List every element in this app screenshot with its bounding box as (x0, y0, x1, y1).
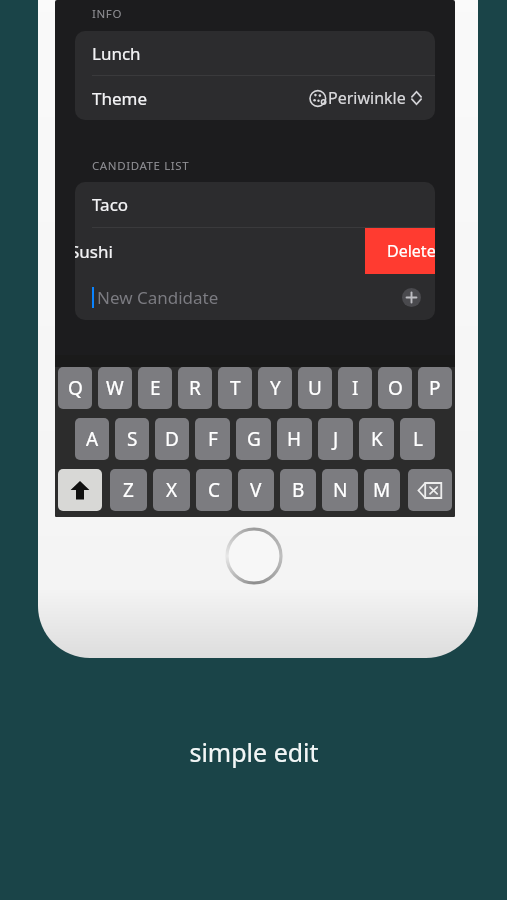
staticText: I (352, 375, 359, 401)
staticText: Sushi (75, 240, 113, 263)
staticText: Z (123, 477, 134, 503)
button[interactable]: S (115, 418, 149, 460)
staticText: H (287, 426, 302, 452)
button[interactable]: Add candidate (402, 288, 421, 307)
staticText: B (292, 477, 305, 503)
button[interactable]: V (238, 469, 274, 511)
staticText: U (308, 375, 322, 401)
staticText: Theme (92, 87, 148, 110)
button[interactable]: J (318, 418, 353, 460)
button[interactable]: L (400, 418, 435, 460)
staticText: INFO (92, 6, 122, 22)
staticText: Periwinkle (328, 87, 406, 109)
button[interactable]: Delete (365, 228, 435, 274)
button[interactable]: New Candidate (75, 274, 435, 320)
staticText: W (106, 375, 124, 401)
button[interactable]: Taco (75, 182, 435, 227)
button[interactable]: A (75, 418, 109, 460)
staticText: S (127, 426, 138, 452)
button[interactable]: F (195, 418, 230, 460)
staticText: R (189, 375, 201, 401)
button[interactable]: H (277, 418, 312, 460)
button[interactable]: D (155, 418, 189, 460)
button[interactable]: P (418, 367, 452, 409)
staticText: CANDIDATE LIST (92, 158, 190, 174)
staticText: M (373, 477, 391, 503)
button[interactable]: K (359, 418, 394, 460)
staticText: V (250, 477, 262, 503)
button[interactable]: Y (258, 367, 292, 409)
staticText: C (208, 477, 221, 503)
button[interactable]: O (378, 367, 412, 409)
button[interactable]: N (322, 469, 358, 511)
button[interactable]: Shift (58, 469, 102, 511)
button[interactable]: M (364, 469, 400, 511)
button[interactable]: Theme (75, 76, 435, 120)
staticText: G (247, 426, 261, 452)
button[interactable]: E (138, 367, 172, 409)
staticText: K (371, 426, 383, 452)
button[interactable]: R (178, 367, 212, 409)
button[interactable]: X (153, 469, 190, 511)
staticText: Taco (92, 193, 129, 216)
staticText: P (429, 375, 441, 401)
staticText: D (165, 426, 179, 452)
staticText: J (333, 426, 339, 452)
button[interactable]: Backspace (408, 469, 452, 511)
staticText: T (230, 375, 241, 401)
button[interactable]: C (196, 469, 232, 511)
staticText: simple edit (189, 735, 319, 769)
button[interactable]: Z (110, 469, 147, 511)
staticText: New Candidate (97, 286, 219, 309)
staticText: Lunch (92, 42, 141, 65)
staticText: X (166, 477, 178, 503)
button[interactable]: G (236, 418, 271, 460)
staticText: Delete (387, 240, 435, 262)
button[interactable]: Lunch (75, 31, 435, 75)
button[interactable]: Q (58, 367, 92, 409)
staticText: F (208, 426, 218, 452)
staticText: L (413, 426, 423, 452)
button[interactable]: Sushi (75, 228, 413, 274)
button[interactable]: T (218, 367, 252, 409)
button[interactable]: B (280, 469, 316, 511)
staticText: E (150, 375, 161, 401)
button[interactable]: W (98, 367, 132, 409)
staticText: Y (270, 375, 281, 401)
staticText: A (86, 426, 99, 452)
button[interactable]: U (298, 367, 332, 409)
button[interactable]: I (338, 367, 372, 409)
staticText: Q (68, 375, 83, 401)
other: Home (225, 527, 283, 585)
staticText: N (333, 477, 348, 503)
staticText: O (388, 375, 403, 401)
